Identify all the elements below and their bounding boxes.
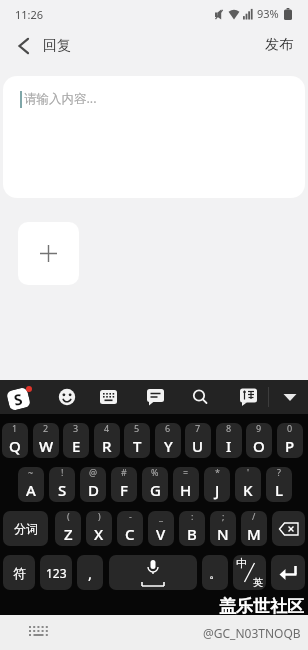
button[interactable]: ? — [266, 467, 292, 502]
button[interactable]: 中 — [233, 555, 266, 590]
button[interactable]: 请输入内容... — [3, 76, 305, 198]
staticText: 回复 — [43, 37, 71, 55]
staticText: S — [58, 480, 67, 500]
button[interactable]: 。 — [202, 555, 228, 590]
button[interactable]: 3 — [63, 423, 89, 458]
staticText: M — [247, 524, 261, 544]
staticText: 123 — [46, 565, 67, 581]
staticText: D — [88, 480, 99, 500]
button[interactable] — [280, 385, 300, 409]
staticText: Y — [164, 436, 173, 456]
button[interactable]: 6 — [155, 423, 181, 458]
button[interactable]: = — [173, 467, 199, 502]
button[interactable]: S — [7, 385, 33, 411]
staticText: ; — [222, 511, 225, 522]
staticText: A — [26, 480, 36, 500]
button[interactable]: : — [179, 511, 205, 546]
button[interactable] — [55, 385, 79, 409]
button[interactable] — [238, 385, 260, 409]
staticText: # — [121, 467, 127, 478]
button[interactable] — [8, 32, 38, 60]
staticText: 8 — [226, 423, 232, 434]
staticText: @GC_N03TNOQB — [203, 625, 301, 641]
button[interactable]: 123 — [40, 555, 72, 590]
button[interactable] — [24, 620, 52, 644]
button[interactable]: 5 — [124, 423, 150, 458]
staticText: / — [252, 511, 256, 522]
button[interactable]: 8 — [216, 423, 242, 458]
staticText: ( — [67, 511, 70, 522]
staticText: J — [215, 480, 220, 500]
staticText: T — [133, 436, 142, 456]
staticText: K — [243, 480, 253, 500]
button[interactable]: 分词 — [3, 511, 48, 546]
button[interactable]: / — [241, 511, 267, 546]
button[interactable] — [272, 511, 305, 546]
button[interactable]: # — [111, 467, 137, 502]
staticText: ~ — [28, 467, 34, 478]
button[interactable]: 7 — [185, 423, 211, 458]
button[interactable] — [18, 222, 79, 285]
staticText: ' — [247, 467, 250, 478]
staticText: Q — [9, 436, 21, 456]
staticText: O — [253, 436, 265, 456]
staticText: 4 — [104, 423, 110, 434]
staticText: _ — [159, 511, 163, 522]
button[interactable]: 发布 — [256, 31, 302, 59]
staticText: 2 — [43, 423, 49, 434]
staticText: X — [94, 524, 104, 544]
staticText: 11:26 — [15, 7, 44, 22]
staticText: % — [151, 467, 159, 478]
staticText: 分词 — [14, 521, 38, 536]
button[interactable] — [189, 385, 211, 409]
button[interactable]: , — [77, 555, 103, 590]
button[interactable] — [145, 385, 167, 409]
button[interactable]: % — [142, 467, 168, 502]
staticText: , — [88, 563, 93, 583]
staticText: V — [156, 524, 166, 544]
staticText: = — [183, 467, 189, 478]
staticText: 6 — [165, 423, 171, 434]
button[interactable] — [98, 385, 120, 409]
button[interactable]: 9 — [246, 423, 272, 458]
staticText: I — [226, 436, 232, 456]
button[interactable]: 0 — [277, 423, 303, 458]
staticText: 5 — [134, 423, 140, 434]
staticText: N — [217, 524, 229, 544]
button[interactable]: ~ — [18, 467, 44, 502]
staticText: Z — [64, 524, 73, 544]
staticText: - — [129, 511, 132, 522]
staticText: 3 — [73, 423, 79, 434]
button[interactable] — [271, 555, 305, 590]
staticText: 9 — [256, 423, 262, 434]
button[interactable]: @ — [80, 467, 106, 502]
button[interactable]: ; — [210, 511, 236, 546]
button[interactable]: - — [117, 511, 143, 546]
button[interactable]: ) — [86, 511, 112, 546]
button[interactable]: _ — [148, 511, 174, 546]
staticText: 发布 — [265, 36, 293, 54]
staticText: R — [102, 436, 112, 456]
staticText: G — [150, 480, 161, 500]
staticText: 1 — [12, 423, 18, 434]
button[interactable]: * — [204, 467, 230, 502]
staticText: 请输入内容... — [24, 90, 97, 107]
staticText: B — [187, 524, 197, 544]
staticText: ) — [98, 511, 101, 522]
staticText: 0 — [287, 423, 293, 434]
button[interactable] — [109, 555, 197, 590]
staticText: F — [120, 480, 128, 500]
button[interactable]: 符 — [3, 555, 35, 590]
button[interactable]: ! — [49, 467, 75, 502]
staticText: E — [72, 436, 81, 456]
staticText: 英 — [253, 576, 263, 589]
staticText: @ — [89, 467, 98, 478]
staticText: 盖乐世社区 — [219, 596, 304, 617]
staticText: W — [39, 436, 54, 456]
button[interactable]: 1 — [2, 423, 28, 458]
staticText: P — [285, 436, 295, 456]
button[interactable]: 2 — [33, 423, 59, 458]
button[interactable]: 4 — [94, 423, 120, 458]
button[interactable]: ' — [235, 467, 261, 502]
button[interactable]: ( — [55, 511, 81, 546]
